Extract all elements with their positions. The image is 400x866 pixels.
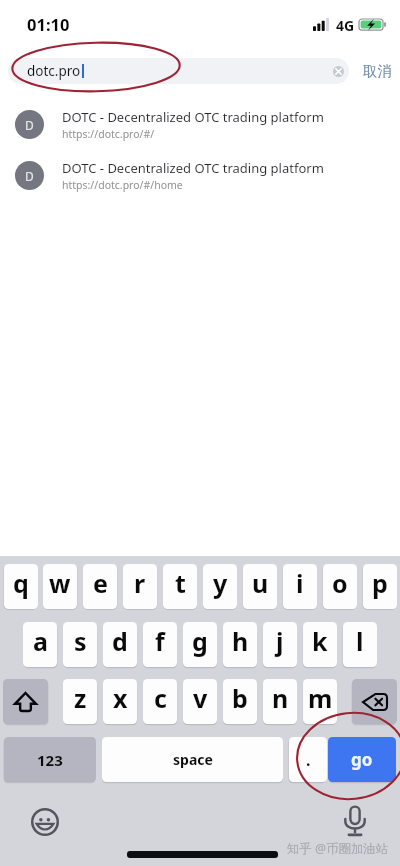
staticText: f bbox=[155, 624, 165, 658]
staticText: p bbox=[372, 566, 388, 600]
button[interactable]: y bbox=[203, 564, 237, 609]
button[interactable]: r bbox=[123, 564, 157, 609]
button[interactable]: space bbox=[102, 737, 283, 782]
button[interactable]: i bbox=[283, 564, 317, 609]
staticText: DOTC - Decentralized OTC trading platfor… bbox=[62, 108, 324, 126]
staticText: 4G bbox=[336, 16, 355, 35]
staticText: o bbox=[332, 566, 348, 600]
button[interactable]: e bbox=[83, 564, 117, 609]
button[interactable]: Voice input bbox=[344, 806, 366, 837]
staticText: w bbox=[49, 566, 71, 600]
button[interactable]: x bbox=[103, 679, 137, 724]
button[interactable]: l bbox=[343, 622, 377, 667]
button[interactable]: o bbox=[323, 564, 357, 609]
staticText: h bbox=[232, 624, 249, 658]
staticText: . bbox=[306, 749, 311, 771]
staticText: x bbox=[113, 681, 128, 715]
button[interactable]: m bbox=[303, 679, 337, 724]
staticText: v bbox=[193, 681, 208, 715]
other: Clear text bbox=[333, 66, 344, 77]
button[interactable]: b bbox=[223, 679, 257, 724]
staticText: DOTC - Decentralized OTC trading platfor… bbox=[62, 159, 324, 177]
button[interactable]: 取消 bbox=[356, 57, 398, 85]
button[interactable]: a bbox=[23, 622, 57, 667]
staticText: y bbox=[213, 566, 228, 600]
staticText: j bbox=[276, 624, 284, 658]
button[interactable]: Backspace bbox=[352, 679, 397, 724]
staticText: b bbox=[232, 681, 248, 715]
staticText: k bbox=[312, 624, 328, 658]
button[interactable]: k bbox=[303, 622, 337, 667]
staticText: e bbox=[93, 566, 108, 600]
staticText: 取消 bbox=[363, 62, 392, 80]
button[interactable]: . bbox=[289, 737, 327, 782]
button[interactable]: Shift bbox=[3, 679, 48, 724]
button[interactable]: g bbox=[183, 622, 217, 667]
staticText: s bbox=[74, 624, 87, 658]
button[interactable]: s bbox=[63, 622, 97, 667]
button[interactable]: d bbox=[103, 622, 137, 667]
button[interactable]: Emoji keyboard bbox=[31, 808, 59, 836]
button[interactable]: h bbox=[223, 622, 257, 667]
button[interactable]: dotc.pro bbox=[8, 58, 349, 84]
staticText: D bbox=[25, 117, 34, 133]
staticText: https://dotc.pro/#/home bbox=[62, 178, 183, 192]
staticText: i bbox=[296, 566, 304, 600]
staticText: l bbox=[356, 624, 364, 658]
staticText: z bbox=[74, 681, 87, 715]
staticText: https://dotc.pro/#/ bbox=[62, 127, 155, 141]
button[interactable]: 123 bbox=[4, 737, 96, 782]
button[interactable]: f bbox=[143, 622, 177, 667]
staticText: D bbox=[25, 168, 34, 184]
staticText: go bbox=[351, 748, 373, 771]
button[interactable]: go bbox=[328, 737, 396, 782]
staticText: u bbox=[252, 566, 269, 600]
staticText: g bbox=[192, 624, 208, 658]
button[interactable]: j bbox=[263, 622, 297, 667]
button[interactable]: u bbox=[243, 564, 277, 609]
button[interactable]: q bbox=[4, 564, 38, 609]
staticText: 123 bbox=[37, 750, 63, 770]
button[interactable]: c bbox=[143, 679, 177, 724]
button[interactable]: D bbox=[0, 99, 400, 150]
staticText: n bbox=[272, 681, 289, 715]
button[interactable]: p bbox=[363, 564, 397, 609]
staticText: m bbox=[308, 681, 333, 715]
staticText: a bbox=[33, 624, 48, 658]
staticText: r bbox=[134, 566, 146, 600]
staticText: t bbox=[175, 566, 186, 600]
button[interactable]: n bbox=[263, 679, 297, 724]
button[interactable]: z bbox=[63, 679, 97, 724]
staticText: space bbox=[173, 750, 213, 769]
staticText: dotc.pro bbox=[27, 62, 81, 80]
staticText: 知乎 @币圈加油站 bbox=[287, 840, 389, 857]
button[interactable]: v bbox=[183, 679, 217, 724]
button[interactable]: t bbox=[163, 564, 197, 609]
staticText: 01:10 bbox=[27, 13, 70, 35]
button[interactable]: w bbox=[43, 564, 77, 609]
staticText: q bbox=[13, 566, 29, 600]
staticText: c bbox=[154, 681, 167, 715]
staticText: d bbox=[112, 624, 128, 658]
button[interactable]: D bbox=[0, 150, 400, 201]
